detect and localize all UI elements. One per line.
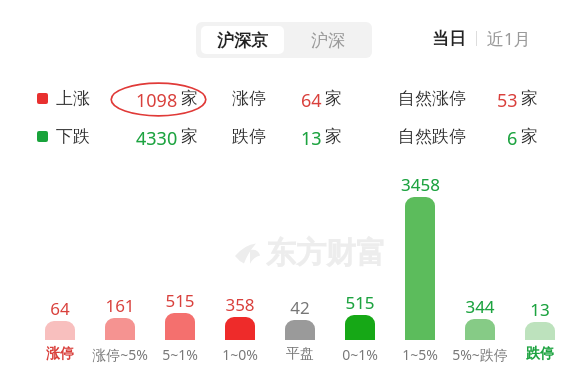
- staticText: 家: [325, 126, 342, 147]
- staticText: 家: [521, 88, 538, 109]
- staticText: 涨停: [232, 88, 266, 109]
- staticText: 13: [530, 298, 550, 321]
- staticText: 涨停: [46, 345, 74, 363]
- button[interactable]: [165, 313, 195, 340]
- staticText: 5~1%: [162, 345, 198, 364]
- button[interactable]: [465, 319, 495, 340]
- staticText: 3458: [401, 173, 440, 196]
- staticText: 6: [507, 126, 518, 151]
- button[interactable]: [405, 197, 435, 340]
- staticText: 东方财富: [266, 234, 386, 272]
- staticText: 53: [497, 88, 518, 113]
- button[interactable]: 近1月: [485, 27, 533, 50]
- button[interactable]: 沪深京: [201, 26, 284, 54]
- staticText: 344: [465, 295, 495, 318]
- button[interactable]: 下跌: [37, 126, 90, 147]
- button[interactable]: [285, 320, 315, 340]
- staticText: 跌停: [232, 126, 266, 147]
- staticText: 近1月: [487, 27, 531, 50]
- staticText: 42: [290, 296, 310, 319]
- staticText: 358: [225, 293, 255, 316]
- staticText: 1098: [136, 88, 178, 113]
- staticText: 1~0%: [222, 345, 258, 364]
- staticText: 1~5%: [402, 345, 438, 364]
- button[interactable]: 当日: [430, 28, 468, 49]
- staticText: 平盘: [286, 345, 314, 363]
- staticText: 跌停: [526, 345, 554, 363]
- button[interactable]: [225, 317, 255, 340]
- button[interactable]: [105, 318, 135, 340]
- staticText: 0~1%: [342, 345, 378, 364]
- staticText: 13: [301, 126, 322, 151]
- staticText: 自然跌停: [398, 126, 466, 147]
- staticText: 515: [165, 289, 195, 312]
- staticText: 64: [50, 297, 70, 320]
- staticText: 64: [301, 88, 322, 113]
- staticText: 沪深京: [217, 30, 268, 51]
- staticText: 515: [345, 291, 375, 314]
- staticText: 家: [181, 88, 198, 109]
- staticText: 4330: [136, 126, 178, 151]
- staticText: 下跌: [56, 126, 90, 147]
- button[interactable]: 上涨: [37, 88, 90, 109]
- staticText: 161: [105, 294, 135, 317]
- staticText: 当日: [432, 28, 466, 49]
- staticText: 5%~跌停: [452, 345, 508, 364]
- staticText: 家: [325, 88, 342, 109]
- staticText: 自然涨停: [398, 88, 466, 109]
- button[interactable]: [345, 315, 375, 340]
- button[interactable]: 沪深: [286, 26, 369, 54]
- staticText: 沪深: [311, 30, 345, 51]
- staticText: 家: [521, 126, 538, 147]
- staticText: 涨停~5%: [92, 345, 148, 364]
- staticText: 上涨: [56, 88, 90, 109]
- button[interactable]: [525, 322, 555, 340]
- staticText: 家: [181, 126, 198, 147]
- button[interactable]: [45, 321, 75, 340]
